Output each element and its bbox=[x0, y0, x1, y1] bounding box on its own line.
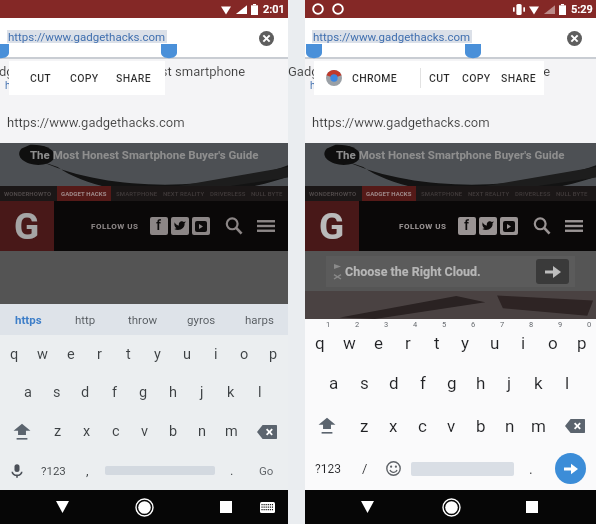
button[interactable]: p bbox=[567, 319, 596, 361]
button[interactable]: x bbox=[379, 404, 408, 447]
button[interactable]: Choose the Right Cloud. bbox=[326, 256, 575, 287]
button[interactable]: d bbox=[379, 361, 408, 404]
button[interactable]: j bbox=[187, 373, 216, 412]
button[interactable]: , bbox=[74, 451, 101, 490]
button[interactable]: k bbox=[524, 361, 553, 404]
button[interactable]: a bbox=[319, 361, 349, 404]
button[interactable]: z bbox=[43, 412, 72, 451]
button[interactable]: s bbox=[349, 361, 379, 404]
button[interactable]: https://www.gadgethacks.com bbox=[0, 101, 288, 143]
button[interactable]: l bbox=[245, 373, 274, 412]
button[interactable]: r bbox=[393, 319, 422, 361]
button[interactable]: Facebook bbox=[150, 217, 168, 235]
button[interactable]: e bbox=[56, 335, 85, 373]
button[interactable]: r bbox=[85, 335, 114, 373]
button[interactable]: CHROME bbox=[314, 61, 420, 95]
button[interactable]: Back bbox=[353, 493, 381, 521]
button[interactable]: Voice input bbox=[0, 451, 33, 490]
button[interactable]: l bbox=[553, 361, 582, 404]
button[interactable]: Back bbox=[48, 493, 76, 521]
button[interactable]: Home bbox=[437, 493, 465, 521]
button[interactable]: h bbox=[158, 373, 187, 412]
button[interactable]: s bbox=[42, 373, 71, 412]
button[interactable]: c bbox=[408, 404, 437, 447]
button[interactable]: Gadget Hacks - The most honest smartphon… bbox=[0, 59, 288, 101]
button[interactable]: u bbox=[480, 319, 509, 361]
button[interactable]: throw bbox=[114, 304, 172, 335]
button[interactable]: http bbox=[57, 304, 114, 335]
button[interactable]: i bbox=[201, 335, 230, 373]
button[interactable]: b bbox=[159, 412, 188, 451]
button[interactable]: Twitter bbox=[171, 217, 189, 235]
button[interactable]: j bbox=[495, 361, 524, 404]
button[interactable]: y bbox=[143, 335, 172, 373]
button[interactable]: n bbox=[495, 404, 524, 447]
button[interactable]: a bbox=[14, 373, 42, 412]
button[interactable]: Recents bbox=[519, 494, 545, 520]
button[interactable]: n bbox=[188, 412, 217, 451]
button[interactable]: Backspace bbox=[246, 412, 288, 451]
button[interactable]: y bbox=[451, 319, 480, 361]
button[interactable]: g bbox=[129, 373, 158, 412]
button[interactable]: w bbox=[28, 335, 56, 373]
button[interactable]: CUT bbox=[421, 61, 457, 95]
button[interactable]: Twitter bbox=[479, 217, 497, 235]
button[interactable]: i bbox=[509, 319, 538, 361]
button[interactable]: k bbox=[216, 373, 245, 412]
button[interactable]: SHARE bbox=[107, 61, 159, 95]
button[interactable] bbox=[101, 451, 218, 490]
button[interactable]: . bbox=[218, 451, 245, 490]
button[interactable]: u bbox=[172, 335, 201, 373]
button[interactable]: e bbox=[364, 319, 393, 361]
button[interactable]: Backspace bbox=[553, 404, 596, 447]
button[interactable]: Switch keyboard bbox=[255, 495, 279, 519]
button[interactable]: Go bbox=[245, 451, 288, 490]
button[interactable]: w bbox=[335, 319, 364, 361]
button[interactable]: g bbox=[437, 361, 466, 404]
button[interactable]: o bbox=[230, 335, 259, 373]
button[interactable]: t bbox=[422, 319, 451, 361]
button[interactable]: Emoji bbox=[379, 447, 408, 490]
button[interactable]: SHARE bbox=[496, 61, 540, 95]
button[interactable]: COPY bbox=[61, 61, 107, 95]
button[interactable]: ?123 bbox=[305, 447, 350, 490]
button[interactable]: YouTube bbox=[500, 217, 518, 235]
button[interactable]: x bbox=[72, 412, 101, 451]
button[interactable]: m bbox=[524, 404, 553, 447]
button[interactable]: Menu bbox=[256, 216, 276, 236]
button[interactable]: Shift bbox=[305, 404, 349, 447]
button[interactable]: Facebook bbox=[458, 217, 476, 235]
button[interactable]: https://www.gadgethacks.com bbox=[8, 30, 166, 43]
button[interactable]: b bbox=[466, 404, 495, 447]
button[interactable]: Clear text bbox=[253, 25, 279, 51]
button[interactable]: YouTube bbox=[192, 217, 210, 235]
button[interactable]: https bbox=[0, 304, 57, 335]
button[interactable]: ?123 bbox=[33, 451, 74, 490]
button[interactable]: t bbox=[114, 335, 143, 373]
button[interactable]: . bbox=[516, 447, 545, 490]
button[interactable]: f bbox=[408, 361, 437, 404]
button[interactable]: q bbox=[305, 319, 335, 361]
button[interactable]: d bbox=[71, 373, 100, 412]
button[interactable]: Go bbox=[545, 447, 596, 490]
button[interactable]: o bbox=[538, 319, 567, 361]
button[interactable]: https://www.gadgethacks.com bbox=[313, 30, 471, 43]
button[interactable]: Home bbox=[130, 493, 158, 521]
button[interactable] bbox=[408, 447, 516, 490]
button[interactable]: h bbox=[466, 361, 495, 404]
button[interactable]: COPY bbox=[457, 61, 496, 95]
button[interactable]: Open advertisement bbox=[536, 259, 569, 284]
button[interactable]: Search bbox=[532, 216, 552, 236]
button[interactable]: Shift bbox=[0, 412, 43, 451]
button[interactable]: gyros bbox=[172, 304, 230, 335]
button[interactable]: harps bbox=[230, 304, 288, 335]
button[interactable]: CUT bbox=[19, 61, 61, 95]
button[interactable]: f bbox=[100, 373, 129, 412]
button[interactable]: Gadget Hacks - The most honest smartphon… bbox=[305, 59, 596, 101]
button[interactable]: / bbox=[350, 447, 379, 490]
button[interactable]: c bbox=[101, 412, 130, 451]
button[interactable]: https://www.gadgethacks.com bbox=[305, 101, 596, 143]
button[interactable]: v bbox=[437, 404, 466, 447]
button[interactable]: z bbox=[349, 404, 379, 447]
button[interactable]: q bbox=[0, 335, 28, 373]
